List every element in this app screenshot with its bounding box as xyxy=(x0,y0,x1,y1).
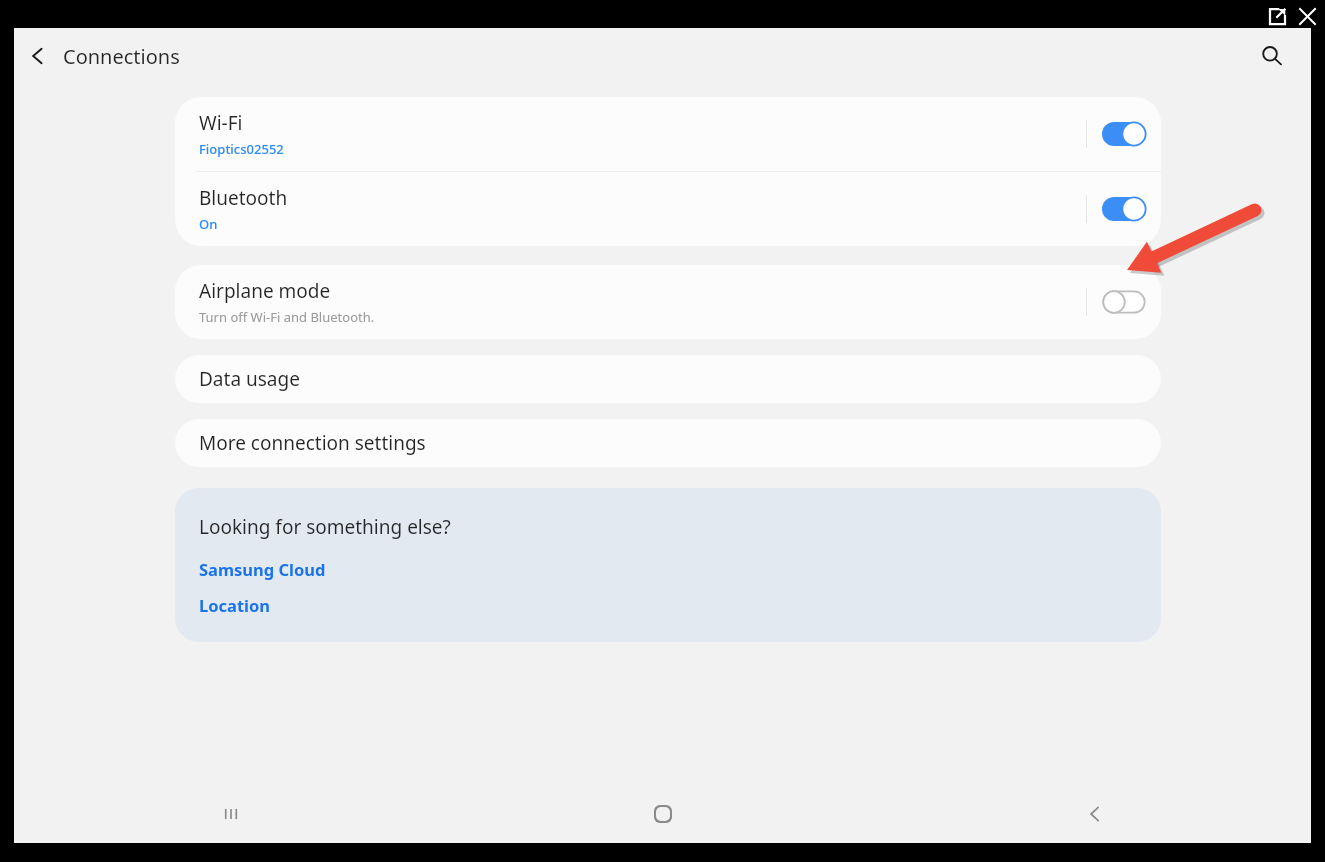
button[interactable]: Wi-Fi switch xyxy=(1087,97,1161,171)
button[interactable]: Wi-Fi xyxy=(175,97,1161,171)
button[interactable]: Open in new window xyxy=(1264,3,1290,29)
staticText: Wi-Fi xyxy=(199,110,243,136)
other: Back xyxy=(14,32,62,80)
button[interactable]: Close xyxy=(1294,3,1320,29)
button[interactable]: Airplane mode switch xyxy=(1087,265,1161,339)
button[interactable]: Bluetooth xyxy=(175,172,1161,246)
staticText: Data usage xyxy=(199,366,300,392)
staticText: Airplane mode xyxy=(199,278,331,304)
button[interactable]: More connection settings xyxy=(175,419,1161,467)
button[interactable]: Bluetooth switch xyxy=(1087,172,1161,246)
button[interactable]: Data usage xyxy=(175,355,1161,403)
button[interactable]: Search xyxy=(1248,32,1296,80)
staticText: More connection settings xyxy=(199,430,426,456)
button[interactable]: Location xyxy=(199,594,271,616)
staticText: Bluetooth xyxy=(199,185,288,211)
staticText: Turn off Wi-Fi and Bluetooth. xyxy=(199,308,375,326)
staticText: Looking for something else? xyxy=(199,514,451,540)
staticText: On xyxy=(199,215,218,233)
button[interactable]: Recent apps xyxy=(14,785,447,843)
button[interactable]: Home xyxy=(447,785,879,843)
button[interactable]: Back xyxy=(879,785,1311,843)
button[interactable]: Airplane mode xyxy=(175,265,1161,339)
staticText: Connections xyxy=(63,43,180,70)
button[interactable]: Back xyxy=(14,32,179,80)
staticText: Samsung Cloud xyxy=(199,558,326,580)
button[interactable]: Samsung Cloud xyxy=(199,558,326,580)
staticText: Location xyxy=(199,594,271,616)
staticText: Fioptics02552 xyxy=(199,140,284,158)
